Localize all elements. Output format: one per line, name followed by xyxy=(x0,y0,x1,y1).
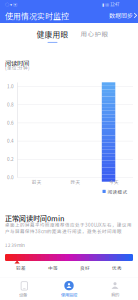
button[interactable]: 我的 xyxy=(92,280,138,299)
staticText: 0.0 xyxy=(7,174,14,181)
staticText: 0.8 xyxy=(7,101,14,108)
staticText: 桌面上的屏幕平均照度推荐值应处于300LUX左右，建议用户与屏幕保持38cm的距… xyxy=(5,221,132,235)
staticText: 0.2 xyxy=(7,156,14,162)
button[interactable]: 使用监控 xyxy=(46,280,92,299)
button[interactable]: 健康用眼 xyxy=(35,29,69,42)
staticText: 健康用眼 xyxy=(36,29,68,40)
button[interactable]: 设备 xyxy=(0,280,46,299)
staticText: ▮ ▦ 12:47 xyxy=(102,1,119,7)
staticText: 阅读模式 xyxy=(107,188,127,195)
button[interactable]: 用心护眼 xyxy=(77,30,111,38)
button[interactable]: 数据同步 xyxy=(109,11,138,19)
staticText: 设备 xyxy=(19,291,27,298)
staticText: 前天 xyxy=(32,179,42,185)
staticText: 阅读时间 xyxy=(5,58,29,68)
staticText: 用心护眼 xyxy=(80,29,108,39)
staticText: 正常阅读时间0min xyxy=(5,213,64,223)
staticText: 1239min xyxy=(5,241,25,248)
staticText: 今天 xyxy=(109,179,119,185)
staticText: 数据同步 xyxy=(109,11,133,20)
staticText: 我的 xyxy=(111,291,119,298)
staticText: 较差 xyxy=(16,265,26,271)
staticText: 中等 xyxy=(48,265,58,271)
staticText: 使用监控 xyxy=(61,292,77,298)
staticText: 良好 xyxy=(80,265,90,271)
staticText: 0.4 xyxy=(7,137,14,144)
staticText: 昨天 xyxy=(70,179,80,185)
staticText: 0.6 xyxy=(7,119,14,126)
staticText: 使用情况实时监控 xyxy=(5,10,69,21)
staticText: (单位:分钟) xyxy=(5,65,30,71)
staticText: 1.0 xyxy=(7,83,14,90)
staticText: ◌ ▾ ▣ xyxy=(5,1,17,7)
staticText: 优秀 xyxy=(112,265,122,271)
